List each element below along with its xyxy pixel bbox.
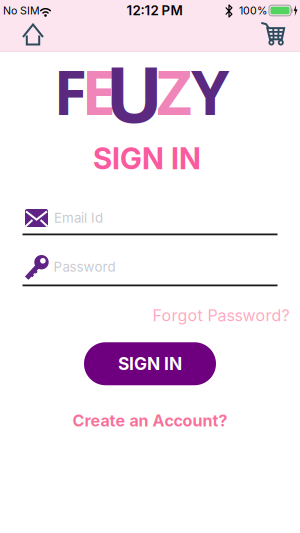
staticText: Password xyxy=(53,259,115,275)
button[interactable]: SIGN IN xyxy=(84,342,216,385)
staticText: Forgot Password? xyxy=(152,306,289,325)
button[interactable]: Password xyxy=(22,253,277,281)
staticText: Y xyxy=(191,49,229,133)
staticText: E xyxy=(81,49,115,133)
staticText: Email Id xyxy=(54,210,103,226)
staticText: No SIM xyxy=(3,4,40,17)
button[interactable]: Create an Account? xyxy=(72,411,227,430)
staticText: SIGN IN xyxy=(93,141,201,176)
staticText: 12:12 PM xyxy=(126,3,182,18)
staticText: F xyxy=(53,49,87,133)
staticText: SIGN IN xyxy=(118,353,182,374)
button[interactable]: Email Id xyxy=(22,206,277,230)
staticText: 100% xyxy=(239,4,267,17)
staticText: Z xyxy=(156,49,192,133)
staticText: Create an Account? xyxy=(72,411,227,430)
staticText: U xyxy=(105,40,163,145)
button[interactable]: Home xyxy=(22,22,44,46)
button[interactable]: Cart xyxy=(260,19,286,45)
button[interactable]: Forgot Password? xyxy=(152,306,289,325)
